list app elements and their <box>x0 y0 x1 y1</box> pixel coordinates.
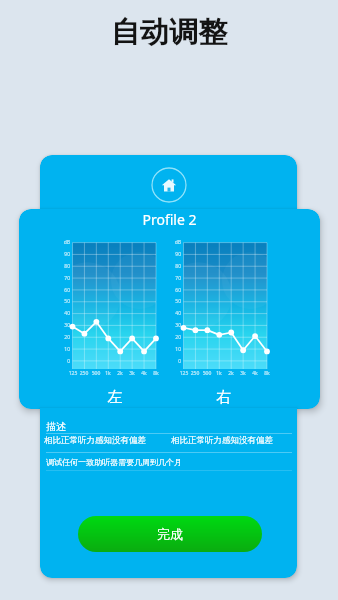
staticText: 30 <box>167 322 181 329</box>
staticText: 125 <box>67 370 79 377</box>
staticText: 8k <box>261 370 273 377</box>
staticText: 自动调整 <box>0 14 338 51</box>
staticText: 60 <box>167 287 181 294</box>
staticText: 60 <box>56 287 70 294</box>
staticText: 50 <box>56 298 70 305</box>
staticText: 0 <box>167 358 181 365</box>
staticText: dB <box>56 239 70 246</box>
staticText: 0 <box>56 358 70 365</box>
staticText: 40 <box>167 310 181 317</box>
staticText: 80 <box>56 263 70 270</box>
staticText: 相比正常听力感知没有偏差 <box>44 435 146 446</box>
staticText: 右 <box>172 388 276 407</box>
staticText: 4k <box>138 370 150 377</box>
staticText: 90 <box>167 251 181 258</box>
staticText: 2k <box>114 370 126 377</box>
staticText: 20 <box>167 334 181 341</box>
staticText: 80 <box>167 263 181 270</box>
staticText: 8k <box>150 370 162 377</box>
staticText: 500 <box>90 370 102 377</box>
staticText: 1k <box>213 370 225 377</box>
staticText: 2k <box>225 370 237 377</box>
staticText: 相比正常听力感知没有偏差 <box>171 435 273 446</box>
button[interactable]: Home <box>151 167 187 203</box>
staticText: 3k <box>237 370 249 377</box>
staticText: 1k <box>102 370 114 377</box>
staticText: Profile 2 <box>19 210 320 229</box>
staticText: 3k <box>126 370 138 377</box>
staticText: 70 <box>167 275 181 282</box>
staticText: 40 <box>56 310 70 317</box>
staticText: 125 <box>178 370 190 377</box>
staticText: 500 <box>201 370 213 377</box>
button[interactable]: 完成 <box>78 516 262 552</box>
staticText: 左 <box>63 388 167 407</box>
staticText: 250 <box>78 370 90 377</box>
staticText: 250 <box>189 370 201 377</box>
staticText: 4k <box>249 370 261 377</box>
staticText: 10 <box>167 346 181 353</box>
staticText: 描述 <box>46 420 66 433</box>
staticText: 30 <box>56 322 70 329</box>
staticText: 10 <box>56 346 70 353</box>
staticText: 调试任何一致助听器需要几周到几个月 <box>46 457 182 467</box>
staticText: 50 <box>167 298 181 305</box>
staticText: 90 <box>56 251 70 258</box>
staticText: 70 <box>56 275 70 282</box>
staticText: dB <box>167 239 181 246</box>
staticText: 20 <box>56 334 70 341</box>
staticText: 完成 <box>157 526 183 542</box>
